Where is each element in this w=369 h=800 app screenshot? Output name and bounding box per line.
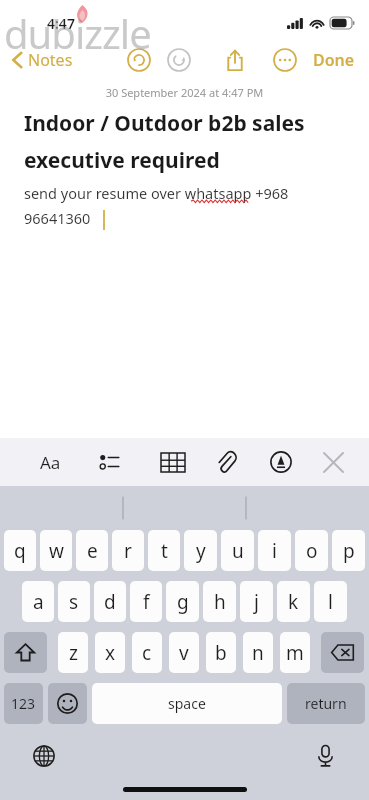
staticText: p xyxy=(343,538,355,564)
staticText: Done xyxy=(313,49,355,71)
staticText: u xyxy=(232,538,244,564)
button[interactable]: Share xyxy=(223,48,247,72)
button[interactable]: Redo xyxy=(167,48,191,72)
button[interactable]: h xyxy=(203,581,236,622)
staticText: 30 September 2024 at 4:47 PM xyxy=(24,85,345,100)
button[interactable]: Dictate xyxy=(310,741,340,771)
staticText: h xyxy=(214,589,226,615)
staticText: x xyxy=(105,640,116,666)
button[interactable]: a xyxy=(22,581,54,622)
button[interactable]: d xyxy=(94,581,126,622)
button[interactable]: q xyxy=(4,530,36,571)
staticText: d xyxy=(104,589,116,615)
staticText: dubizzle xyxy=(4,6,151,60)
staticText: 4:47 xyxy=(47,14,75,33)
button[interactable]: Checklist xyxy=(92,444,128,480)
staticText: m xyxy=(286,640,304,666)
button[interactable]: w xyxy=(40,530,72,571)
staticText: Indoor / Outdoor b2b sales executive req… xyxy=(24,109,345,174)
staticText: i xyxy=(272,538,277,564)
button[interactable]: More options xyxy=(273,48,297,72)
button[interactable]: o xyxy=(295,530,328,571)
button[interactable]: i xyxy=(258,530,291,571)
button[interactable]: t xyxy=(148,530,180,571)
staticText: q xyxy=(14,538,26,564)
staticText: a xyxy=(33,589,44,615)
button[interactable]: g xyxy=(166,581,199,622)
button[interactable]: Switch keyboard xyxy=(29,741,59,771)
staticText: Aa xyxy=(40,451,61,474)
button[interactable]: e xyxy=(76,530,108,571)
staticText: g xyxy=(177,589,189,615)
button[interactable]: return xyxy=(287,683,365,724)
button[interactable]: Notes xyxy=(8,45,77,75)
button[interactable]: Done xyxy=(309,45,359,75)
staticText: n xyxy=(252,640,264,666)
button[interactable]: c xyxy=(132,632,162,673)
button[interactable]: p xyxy=(332,530,365,571)
button[interactable]: Undo xyxy=(127,48,151,72)
staticText: c xyxy=(142,640,152,666)
staticText: y xyxy=(196,538,206,564)
staticText: t xyxy=(161,538,168,564)
staticText: o xyxy=(306,538,318,564)
button[interactable]: s xyxy=(58,581,90,622)
staticText: j xyxy=(254,589,259,615)
button[interactable]: z xyxy=(58,632,88,673)
button[interactable]: Emoji xyxy=(48,683,87,724)
staticText: b xyxy=(215,640,227,666)
staticText: return xyxy=(305,694,347,713)
button[interactable]: x xyxy=(95,632,125,673)
button[interactable]: n xyxy=(243,632,273,673)
button[interactable]: j xyxy=(240,581,273,622)
staticText: f xyxy=(143,589,150,615)
button[interactable]: Text format xyxy=(32,444,68,480)
button[interactable]: 123 xyxy=(4,683,43,724)
button[interactable]: l xyxy=(314,581,347,622)
staticText: space xyxy=(168,694,206,713)
button[interactable]: Table xyxy=(155,444,191,480)
button[interactable]: k xyxy=(277,581,310,622)
staticText: k xyxy=(288,589,299,615)
button[interactable]: Markup xyxy=(263,444,299,480)
button[interactable]: m xyxy=(280,632,310,673)
button[interactable]: Attach xyxy=(208,444,244,480)
button[interactable]: space xyxy=(92,683,282,724)
button[interactable]: f xyxy=(130,581,162,622)
button[interactable]: r xyxy=(112,530,144,571)
staticText: Notes xyxy=(28,49,73,71)
button[interactable]: y xyxy=(184,530,217,571)
button[interactable]: Delete xyxy=(321,632,364,673)
button[interactable]: u xyxy=(221,530,254,571)
button[interactable]: v xyxy=(169,632,199,673)
button[interactable]: Shift xyxy=(4,632,47,673)
staticText: z xyxy=(69,640,78,666)
button[interactable]: Close keyboard xyxy=(315,444,351,480)
staticText: w xyxy=(49,538,64,564)
staticText: 123 xyxy=(11,694,36,713)
staticText: send your resume over whatsapp +968 9664… xyxy=(24,183,345,229)
staticText: v xyxy=(179,640,189,666)
staticText: s xyxy=(69,589,79,615)
button[interactable]: b xyxy=(206,632,236,673)
staticText: l xyxy=(328,589,333,615)
staticText: r xyxy=(124,538,132,564)
staticText: e xyxy=(87,538,98,564)
